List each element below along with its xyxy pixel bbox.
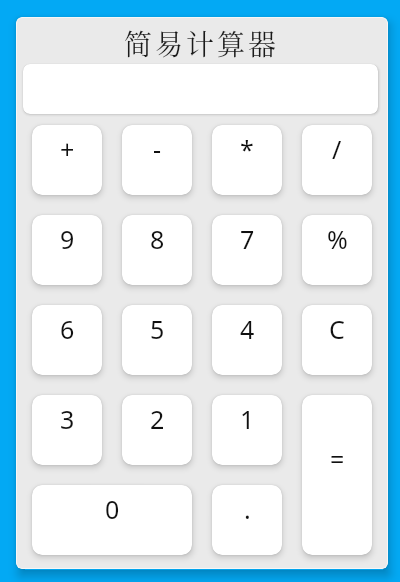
button[interactable]: / (302, 125, 372, 195)
staticText: 7 (240, 222, 255, 256)
staticText: * (240, 132, 254, 166)
staticText: 1 (240, 402, 255, 436)
staticText: % (327, 222, 348, 256)
staticText: - (153, 132, 162, 166)
staticText: = (330, 442, 345, 476)
button[interactable]: 1 (212, 395, 282, 465)
staticText: 2 (150, 402, 165, 436)
staticText: 9 (60, 222, 75, 256)
button[interactable]: 6 (32, 305, 102, 375)
button[interactable]: 5 (122, 305, 192, 375)
button[interactable]: * (212, 125, 282, 195)
button[interactable]: % (302, 215, 372, 285)
staticText: 5 (150, 312, 165, 346)
staticText: 4 (240, 312, 255, 346)
button[interactable]: 2 (122, 395, 192, 465)
button[interactable]: C (302, 305, 372, 375)
staticText: 3 (60, 402, 75, 436)
button[interactable]: - (122, 125, 192, 195)
button[interactable]: 9 (32, 215, 102, 285)
button[interactable]: 7 (212, 215, 282, 285)
staticText: 6 (60, 312, 75, 346)
staticText: C (329, 312, 345, 346)
staticText: . (244, 492, 251, 526)
button[interactable]: 4 (212, 305, 282, 375)
button[interactable]: 8 (122, 215, 192, 285)
staticText: 0 (105, 492, 120, 526)
staticText: 简易计算器 (124, 23, 280, 63)
button[interactable]: = (302, 395, 372, 555)
button[interactable]: 0 (32, 485, 192, 555)
staticText: + (60, 132, 75, 166)
button[interactable]: + (32, 125, 102, 195)
button[interactable]: . (212, 485, 282, 555)
staticText: 8 (150, 222, 165, 256)
button[interactable]: 3 (32, 395, 102, 465)
staticText: / (332, 132, 342, 166)
